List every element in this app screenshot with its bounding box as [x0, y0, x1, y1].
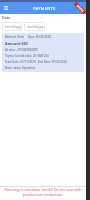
button[interactable]: Menu: [2, 4, 10, 12]
button[interactable]: mm/dd/yyyy: [24, 22, 45, 31]
staticText: mm/dd/yyyy: [5, 25, 22, 29]
staticText: At vtsur +910000000000: [5, 48, 38, 52]
staticText: DEMO: [76, 4, 85, 13]
staticText: Amount $50: [5, 41, 28, 46]
button[interactable]: Method: Bank Date: 05/25/2020: [2, 33, 84, 72]
staticText: PAYMENTS: [33, 6, 56, 11]
staticText: Start Date: 07/17/2020 End Date: 07/20/2…: [5, 60, 68, 64]
button[interactable]: mm/dd/yyyy: [2, 22, 22, 31]
staticText: Toyota Corolla black 20 SVA1234: [5, 54, 49, 58]
staticText: Running in emulator mode! Do not use wit…: [3, 187, 83, 197]
staticText: Note: about Payments: [5, 66, 36, 70]
staticText: Date: [2, 15, 11, 20]
staticText: Method: Bank Date: 05/25/2020: [5, 35, 52, 39]
staticText: mm/dd/yyyy: [27, 25, 44, 29]
